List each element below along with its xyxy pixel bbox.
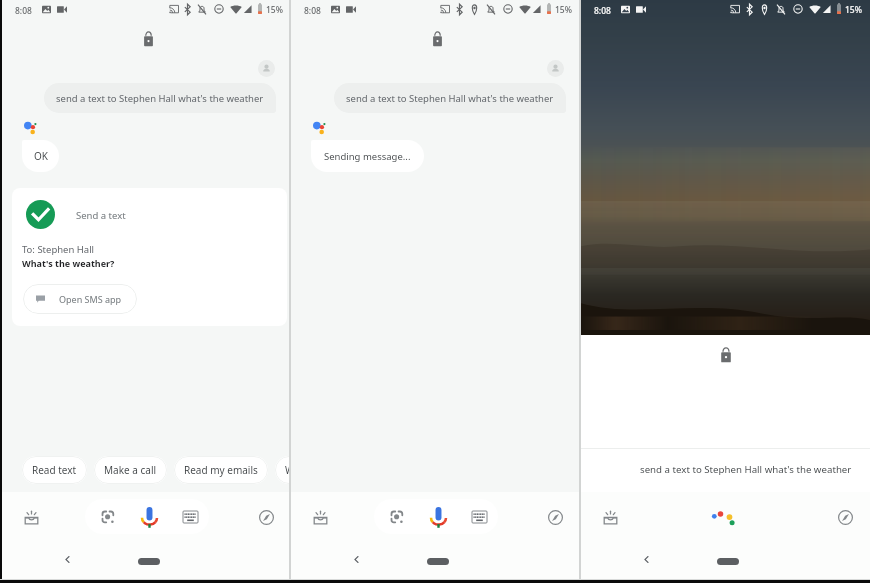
- staticText: What's the weather?: [22, 257, 115, 269]
- button[interactable]: Back: [61, 553, 74, 566]
- staticText: Send a text: [76, 209, 126, 222]
- button[interactable]: What's the weather: [275, 456, 289, 484]
- button[interactable]: Read text: [22, 456, 87, 484]
- button[interactable]: Explore: [838, 510, 853, 525]
- button[interactable]: Keyboard: [472, 511, 487, 523]
- staticText: 15%: [266, 4, 283, 16]
- staticText: 8:08: [304, 5, 321, 17]
- button[interactable]: Google Lens: [85, 499, 209, 534]
- button[interactable]: Open SMS app: [23, 284, 137, 314]
- button[interactable]: Google Lens: [101, 510, 116, 525]
- button[interactable]: Snapshot: [24, 510, 39, 525]
- staticText: What's the weather: [285, 463, 289, 477]
- button[interactable]: Snapshot: [603, 510, 618, 525]
- button[interactable]: Google Lens: [374, 499, 498, 534]
- button[interactable]: Microphone: [141, 506, 158, 528]
- button[interactable]: Home: [138, 558, 160, 565]
- staticText: 15%: [845, 4, 862, 16]
- button[interactable]: Account: [547, 60, 564, 77]
- button[interactable]: Keyboard: [183, 511, 198, 523]
- staticText: send a text to Stephen Hall what's the w…: [346, 92, 554, 105]
- staticText: 15%: [555, 4, 572, 16]
- button[interactable]: Sending message...: [311, 140, 424, 172]
- button[interactable]: Make a call: [94, 456, 167, 484]
- staticText: 8:08: [15, 5, 32, 17]
- button[interactable]: Explore: [548, 510, 563, 525]
- button[interactable]: Google Lens: [390, 510, 405, 525]
- staticText: Read text: [32, 463, 77, 477]
- button[interactable]: Account: [258, 60, 275, 77]
- button[interactable]: Home: [427, 558, 449, 565]
- staticText: Sending message...: [324, 150, 411, 163]
- button[interactable]: Assistant listening: [709, 508, 737, 526]
- button[interactable]: Back: [350, 553, 363, 566]
- button[interactable]: send a text to Stephen Hall what's the w…: [44, 83, 276, 113]
- button[interactable]: Snapshot: [313, 510, 328, 525]
- button[interactable]: Read my emails: [174, 456, 268, 484]
- button[interactable]: Home: [717, 558, 739, 565]
- staticText: OK: [34, 149, 48, 163]
- button[interactable]: Locked: [432, 31, 443, 47]
- button[interactable]: Locked: [720, 347, 732, 363]
- button[interactable]: Microphone: [430, 506, 447, 528]
- button[interactable]: OK: [22, 140, 59, 172]
- staticText: To: Stephen Hall: [22, 243, 95, 256]
- staticText: send a text to Stephen Hall what's the w…: [56, 92, 264, 105]
- staticText: Open SMS app: [59, 293, 122, 305]
- staticText: Read my emails: [184, 463, 258, 477]
- button[interactable]: Locked: [143, 31, 154, 47]
- button[interactable]: Explore: [259, 510, 274, 525]
- button[interactable]: send a text to Stephen Hall what's the w…: [334, 83, 566, 113]
- button[interactable]: Send a text: [12, 188, 287, 326]
- staticText: 8:08: [594, 5, 611, 17]
- staticText: send a text to Stephen Hall what's the w…: [640, 463, 852, 476]
- button[interactable]: Back: [640, 553, 653, 566]
- staticText: Make a call: [104, 463, 157, 477]
